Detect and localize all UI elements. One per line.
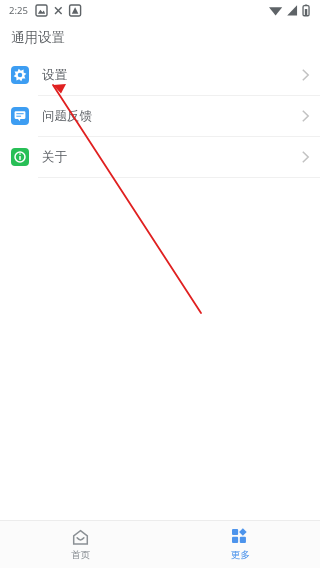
staticText: 问题反馈	[42, 108, 92, 124]
staticText: 首页	[71, 549, 90, 561]
staticText: 通用设置	[11, 29, 65, 46]
button[interactable]: 关于	[0, 137, 320, 177]
button[interactable]: 设置	[0, 55, 320, 95]
button[interactable]: 问题反馈	[0, 96, 320, 136]
staticText: 关于	[42, 149, 67, 165]
button[interactable]: 首页	[0, 521, 160, 568]
button[interactable]: 更多	[160, 521, 320, 568]
staticText: 设置	[42, 67, 67, 83]
staticText: 2:25	[9, 4, 28, 17]
staticText: 更多	[231, 549, 250, 561]
other: 更多	[232, 529, 249, 546]
other: 首页	[72, 529, 89, 546]
